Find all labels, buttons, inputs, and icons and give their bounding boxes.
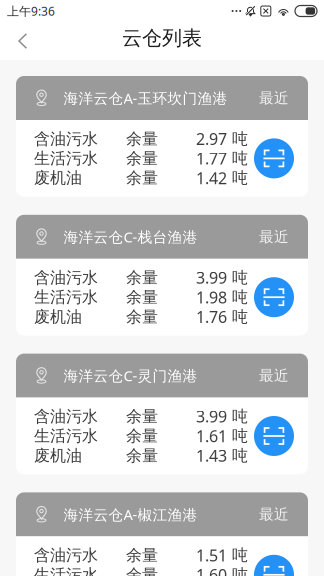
staticText: 2.97: [196, 128, 227, 149]
staticText: 余量: [126, 129, 158, 149]
staticText: 最近: [259, 367, 289, 385]
staticText: 海洋云仓C-栈台渔港: [63, 227, 197, 247]
button[interactable]: 扫码: [254, 138, 294, 178]
staticText: 生活污水: [34, 565, 98, 576]
button[interactable]: 扫码: [254, 555, 294, 576]
staticText: 含油污水: [34, 129, 98, 149]
staticText: 3.99: [196, 406, 227, 427]
staticText: 含油污水: [34, 545, 98, 565]
staticText: 海洋云仓C-灵门渔港: [63, 366, 197, 385]
staticText: 吨: [232, 129, 248, 149]
staticText: 云仓列表: [122, 26, 202, 50]
staticText: 生活污水: [34, 426, 98, 446]
staticText: 1.51: [196, 545, 227, 566]
staticText: 废机油: [34, 307, 82, 327]
staticText: 吨: [232, 287, 248, 307]
staticText: 余量: [126, 446, 158, 465]
staticText: 生活污水: [34, 287, 98, 307]
staticText: 最近: [259, 89, 289, 107]
staticText: 吨: [232, 446, 248, 465]
staticText: 1.77: [196, 148, 227, 169]
staticText: 含油污水: [34, 268, 98, 287]
staticText: 1.42: [196, 167, 227, 189]
staticText: 海洋云仓A-椒江渔港: [63, 505, 197, 524]
staticText: 吨: [232, 168, 248, 188]
staticText: 含油污水: [34, 407, 98, 426]
staticText: 余量: [126, 307, 158, 327]
staticText: 1.60: [196, 564, 227, 576]
staticText: 最近: [259, 505, 289, 523]
staticText: 吨: [232, 149, 248, 168]
staticText: 最近: [259, 228, 289, 246]
button[interactable]: 扫码: [254, 277, 294, 317]
staticText: 废机油: [34, 168, 82, 188]
staticText: 余量: [126, 565, 158, 576]
staticText: 余量: [126, 268, 158, 287]
staticText: 上午9:36: [7, 3, 55, 19]
staticText: 吨: [232, 407, 248, 426]
staticText: 1.43: [196, 445, 227, 466]
staticText: 吨: [232, 565, 248, 576]
staticText: 余量: [126, 407, 158, 426]
button[interactable]: 扫码: [254, 416, 294, 456]
staticText: 余量: [126, 426, 158, 446]
staticText: 吨: [232, 268, 248, 287]
staticText: 余量: [126, 545, 158, 565]
staticText: 余量: [126, 287, 158, 307]
staticText: 3.99: [196, 267, 227, 288]
staticText: 1.98: [196, 287, 227, 308]
staticText: 余量: [126, 168, 158, 188]
button[interactable]: 返回: [0, 22, 41, 60]
staticText: 余量: [126, 149, 158, 168]
staticText: 海洋云仓A-玉环坎门渔港: [63, 88, 227, 108]
staticText: 废机油: [34, 446, 82, 465]
staticText: 吨: [232, 307, 248, 327]
staticText: 1.61: [196, 425, 227, 447]
staticText: 吨: [232, 426, 248, 446]
staticText: 1.76: [196, 306, 227, 327]
staticText: 生活污水: [34, 149, 98, 168]
staticText: 吨: [232, 545, 248, 565]
